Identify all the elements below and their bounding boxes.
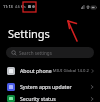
button[interactable]: Search settings — [6, 47, 94, 58]
staticText: 11:13 — [3, 4, 13, 9]
other: Highlighted status bar icon — [23, 2, 36, 12]
staticText: Settings — [8, 26, 50, 41]
button[interactable]: System apps updater — [0, 79, 100, 94]
staticText: About phone — [20, 67, 52, 74]
staticText: System apps updater — [20, 83, 72, 90]
button[interactable]: About phone — [0, 63, 100, 78]
staticText: Security status — [20, 95, 56, 102]
button[interactable]: Security status — [0, 95, 100, 102]
staticText: 4.6 K/s — [15, 4, 26, 9]
staticText: MIUI Global 14.0.2 — [52, 68, 89, 74]
staticText: Search settings — [19, 50, 52, 56]
other: Annotation arrow — [0, 0, 100, 102]
